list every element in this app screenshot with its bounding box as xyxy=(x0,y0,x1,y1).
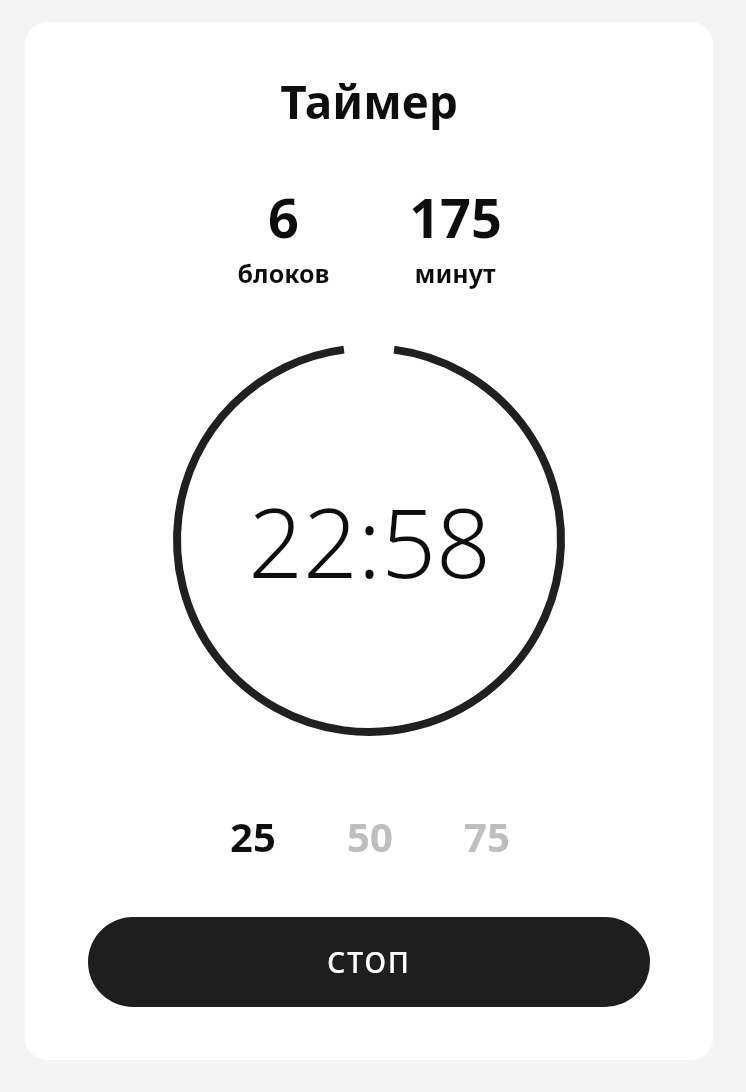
staticText: Таймер xyxy=(280,70,458,133)
staticText: 50 xyxy=(347,809,393,863)
staticText: 75 xyxy=(464,809,510,863)
staticText: 6 xyxy=(268,180,299,254)
staticText: СТОП xyxy=(327,943,411,981)
staticText: 25 xyxy=(230,809,276,863)
staticText: блоков xyxy=(237,256,330,290)
button[interactable]: 50 xyxy=(311,808,428,864)
staticText: 22:58 xyxy=(248,475,491,606)
button[interactable]: Стоп xyxy=(88,917,650,1007)
staticText: минут xyxy=(414,256,496,290)
button[interactable]: 25 xyxy=(194,808,311,864)
staticText: 175 xyxy=(409,180,502,254)
button[interactable]: 75 xyxy=(428,808,545,864)
